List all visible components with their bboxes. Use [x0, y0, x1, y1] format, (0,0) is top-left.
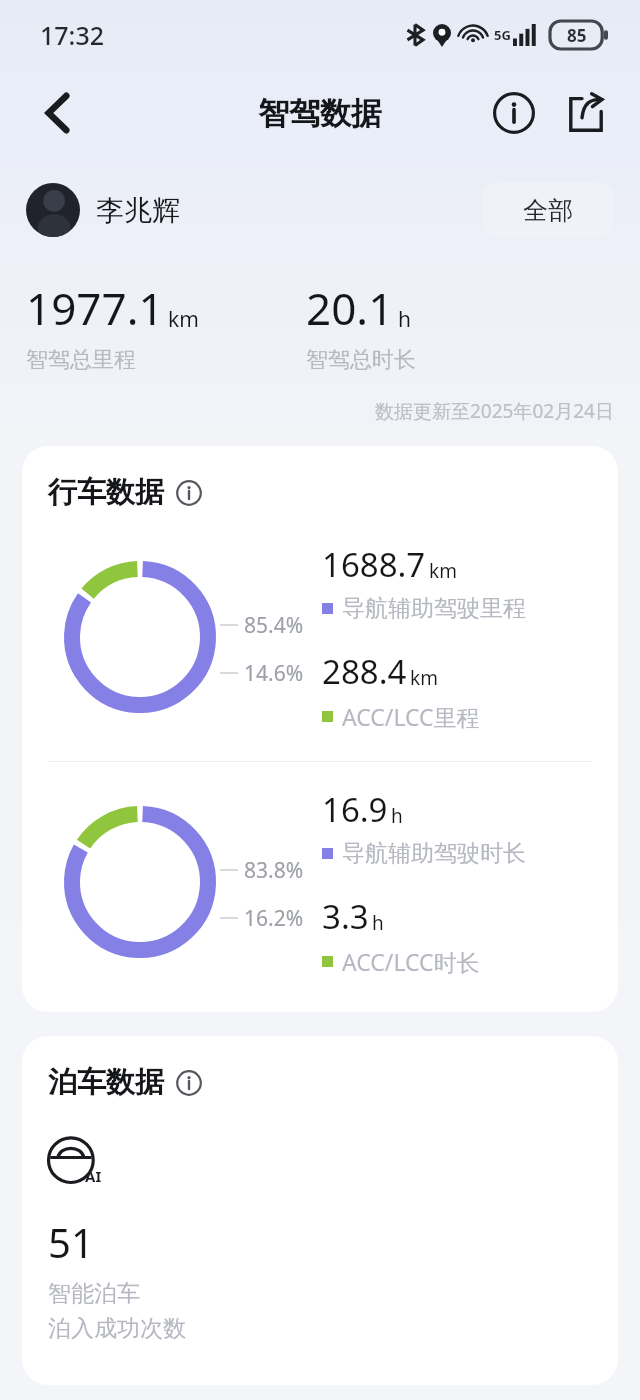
button[interactable]: Back [26, 81, 90, 145]
button[interactable] [26, 183, 80, 237]
staticText: km [168, 305, 199, 334]
staticText: 导航辅助驾驶里程 [342, 594, 526, 623]
button[interactable]: 全部 [482, 182, 614, 238]
button[interactable]: Share [554, 81, 618, 145]
staticText: 数据更新至2025年02月24日 [375, 398, 614, 424]
staticText: 智驾总时长 [306, 346, 416, 374]
staticText: 泊入成功次数 [48, 1314, 186, 1343]
staticText: 1688.7 [322, 542, 426, 587]
staticText: 85 [567, 24, 587, 47]
staticText: 李兆辉 [96, 193, 180, 228]
staticText: 全部 [523, 195, 573, 226]
staticText: km [429, 558, 457, 584]
button[interactable]: Info [482, 81, 546, 145]
staticText: AI [85, 1166, 102, 1186]
staticText: ACC/LCC里程 [342, 701, 480, 732]
staticText: h [372, 910, 384, 936]
staticText: 1977.1 [26, 278, 164, 338]
staticText: 导航辅助驾驶时长 [342, 839, 526, 868]
staticText: ACC/LCC时长 [342, 946, 480, 977]
staticText: 17:32 [40, 18, 105, 52]
staticText: 288.4 [322, 649, 407, 694]
staticText: 51 [48, 1215, 94, 1269]
staticText: 16.2% [244, 904, 304, 933]
staticText: 行车数据 [48, 474, 164, 511]
staticText: 泊车数据 [48, 1064, 164, 1101]
staticText: 16.9 [322, 787, 388, 832]
staticText: 3.3 [322, 894, 369, 939]
staticText: 20.1 [306, 278, 394, 338]
staticText: km [410, 665, 438, 691]
staticText: h [391, 803, 403, 829]
staticText: 14.6% [244, 659, 304, 688]
staticText: 智驾数据 [258, 94, 382, 133]
staticText: 5G [494, 26, 511, 44]
staticText: 83.8% [244, 856, 304, 885]
staticText: 智能泊车 [48, 1279, 140, 1308]
staticText: 智驾总里程 [26, 346, 136, 374]
staticText: h [398, 305, 411, 334]
button[interactable]: 泊车数据 [22, 1036, 618, 1385]
button[interactable]: 行车数据 [22, 446, 618, 1012]
staticText: 85.4% [244, 611, 304, 640]
